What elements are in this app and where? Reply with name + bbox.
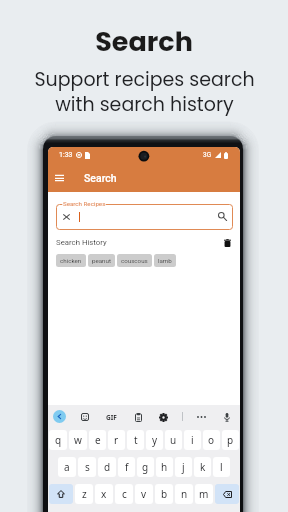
staticText: d [104,460,111,474]
button[interactable]: s [78,457,96,477]
button[interactable]: m [195,484,213,504]
button[interactable]: q [49,430,67,450]
button[interactable]: Back [53,410,66,423]
staticText: c [122,487,127,501]
staticText: Support recipes search with search histo… [34,66,255,118]
button[interactable]: y [146,430,163,450]
staticText: h [161,460,168,474]
button[interactable]: Clipboard [131,410,145,424]
button[interactable]: b [155,484,173,504]
button[interactable]: Clear text [60,211,72,223]
staticText: u [170,433,177,447]
staticText: w [74,433,82,447]
button[interactable]: v [135,484,153,504]
staticText: o [208,433,215,447]
staticText: Search History [56,238,107,247]
button[interactable]: Open navigation menu [48,163,70,192]
button[interactable]: n [175,484,193,504]
button[interactable]: k [194,457,211,477]
button[interactable]: GIF [103,410,119,424]
staticText: j [182,460,185,474]
staticText: a [64,460,70,474]
staticText: Search [84,172,117,184]
staticText: r [114,433,119,447]
button[interactable]: peanut [88,254,115,267]
staticText: z [82,487,87,501]
button[interactable]: Clear search history [223,237,232,249]
button[interactable]: couscous [117,254,152,267]
staticText: s [85,460,90,474]
button[interactable]: Search [215,209,229,223]
staticText: g [142,460,149,474]
button[interactable]: d [98,457,116,477]
button[interactable]: Settings [156,410,170,424]
staticText: f [125,460,129,474]
button[interactable]: a [58,457,76,477]
staticText: p [227,433,234,447]
staticText: i [191,433,194,447]
button[interactable]: z [75,484,93,504]
button[interactable]: g [137,457,154,477]
button[interactable]: Voice input [220,410,234,424]
button[interactable]: c [115,484,133,504]
button[interactable]: j [175,457,192,477]
staticText: 1:33 [59,151,73,159]
button[interactable]: Stickers [78,410,92,424]
staticText: n [181,487,188,501]
staticText: peanut [92,257,111,264]
button[interactable]: x [95,484,113,504]
button[interactable]: lamb [154,254,176,267]
staticText: x [101,487,107,501]
button[interactable]: p [222,430,239,450]
button[interactable]: h [156,457,173,477]
staticText: k [200,460,206,474]
staticText: Search Recipes [63,200,106,207]
button[interactable]: r [108,430,125,450]
button[interactable]: o [203,430,220,450]
staticText: chicken [60,257,82,264]
button[interactable]: Shift [49,484,73,504]
staticText: q [55,433,62,447]
button[interactable]: More options [194,410,208,424]
staticText: GIF [106,413,117,422]
button[interactable]: e [89,430,106,450]
staticText: lamb [158,257,172,264]
button[interactable]: t [127,430,144,450]
staticText: Search [95,23,193,61]
button[interactable]: Backspace [215,484,239,504]
staticText: m [199,487,209,501]
button[interactable]: w [69,430,87,450]
staticText: v [141,487,147,501]
staticText: t [134,433,138,447]
button[interactable]: l [213,457,230,477]
staticText: 3G [203,151,212,159]
staticText: b [161,487,168,501]
staticText: e [95,433,101,447]
staticText: y [152,433,158,447]
staticText: l [220,460,223,474]
button[interactable]: u [165,430,182,450]
staticText: couscous [121,257,148,264]
button[interactable]: chicken [56,254,86,267]
button[interactable]: i [184,430,201,450]
button[interactable]: f [118,457,135,477]
